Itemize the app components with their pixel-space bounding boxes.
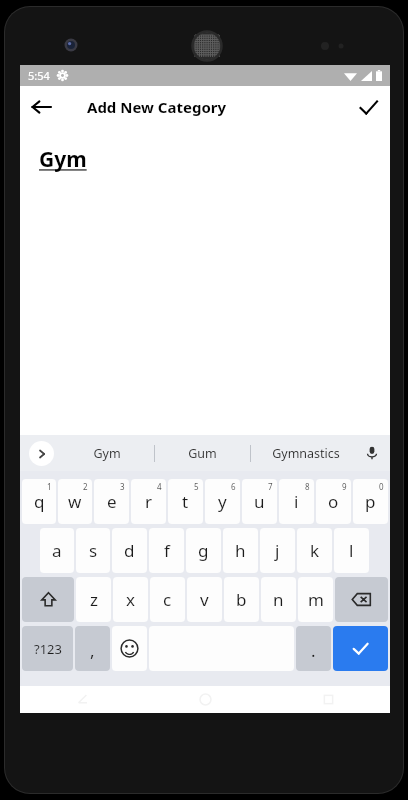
staticText: 5 (194, 481, 199, 492)
staticText: y (218, 490, 227, 513)
button[interactable]: l (334, 528, 369, 573)
button[interactable]: h (223, 528, 258, 573)
staticText: v (200, 588, 209, 611)
button[interactable]: t (168, 479, 203, 524)
button[interactable]: y (205, 479, 240, 524)
staticText: d (124, 539, 135, 562)
staticText: w (68, 490, 82, 513)
button[interactable]: Save (346, 86, 390, 128)
staticText: s (89, 539, 98, 562)
staticText: c (163, 588, 172, 611)
staticText: a (52, 539, 62, 562)
button[interactable]: a (40, 528, 74, 573)
staticText: b (236, 588, 247, 611)
staticText: n (273, 588, 284, 611)
button[interactable]: m (298, 577, 333, 622)
staticText: x (126, 588, 135, 611)
button[interactable]: , (75, 626, 110, 671)
button[interactable]: Gymnastics (251, 435, 360, 471)
staticText: z (90, 588, 98, 611)
staticText: g (198, 539, 209, 562)
staticText: i (294, 490, 299, 513)
button[interactable]: q (22, 479, 56, 524)
button[interactable]: p (353, 479, 388, 524)
button[interactable]: Backspace (335, 577, 388, 622)
button[interactable]: f (149, 528, 184, 573)
button[interactable]: c (150, 577, 185, 622)
staticText: e (107, 490, 117, 513)
button[interactable]: e (94, 479, 129, 524)
button[interactable]: s (76, 528, 110, 573)
staticText: p (365, 490, 376, 513)
button[interactable]: b (224, 577, 259, 622)
staticText: u (254, 490, 265, 513)
staticText: l (349, 539, 354, 562)
staticText: 8 (305, 481, 310, 492)
button[interactable]: Back (20, 86, 62, 128)
button[interactable]: Voice input (359, 440, 385, 466)
staticText: 2 (83, 481, 88, 492)
staticText: f (164, 539, 170, 562)
staticText: t (182, 490, 189, 513)
button[interactable]: . (296, 626, 331, 671)
button[interactable]: ?123 (22, 626, 73, 671)
staticText: 3 (120, 481, 125, 492)
staticText: q (34, 490, 45, 513)
button[interactable]: z (76, 577, 111, 622)
button[interactable]: i (279, 479, 314, 524)
button[interactable]: v (187, 577, 222, 622)
button[interactable]: u (242, 479, 277, 524)
button[interactable]: x (113, 577, 148, 622)
staticText: k (310, 539, 320, 562)
staticText: o (328, 490, 339, 513)
button[interactable]: d (112, 528, 147, 573)
button[interactable]: Gym (60, 435, 154, 471)
staticText: 1 (47, 481, 52, 492)
button[interactable]: Enter (333, 626, 388, 671)
staticText: ?123 (34, 640, 62, 658)
button[interactable]: r (131, 479, 166, 524)
button[interactable]: More suggestions (29, 441, 54, 466)
staticText: Gym (39, 145, 87, 174)
staticText: h (235, 539, 246, 562)
button[interactable]: Shift (22, 577, 74, 622)
button[interactable]: Gum (155, 435, 250, 471)
button[interactable]: k (297, 528, 332, 573)
staticText: 5:54 (28, 68, 50, 83)
button[interactable]: o (316, 479, 351, 524)
staticText: 0 (379, 481, 384, 492)
staticText: 4 (157, 481, 162, 492)
staticText: 9 (342, 481, 347, 492)
button[interactable]: g (186, 528, 221, 573)
staticText: m (308, 588, 324, 611)
staticText: 6 (231, 481, 236, 492)
staticText: 7 (268, 481, 273, 492)
button[interactable]: w (58, 479, 92, 524)
button[interactable]: n (261, 577, 296, 622)
staticText: , (90, 639, 95, 662)
staticText: r (145, 490, 153, 513)
button[interactable]: j (260, 528, 295, 573)
staticText: j (275, 539, 280, 562)
staticText: Gum (188, 445, 217, 462)
staticText: Gym (93, 445, 121, 462)
button[interactable]: Emoji (112, 626, 147, 671)
staticText: Add New Category (87, 97, 227, 117)
staticText: Gymnastics (272, 445, 340, 462)
staticText: . (311, 639, 316, 662)
